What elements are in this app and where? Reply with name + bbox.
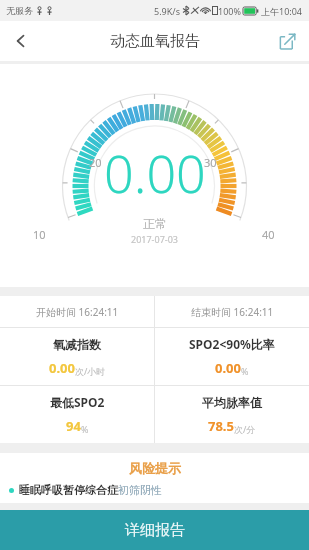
staticText: 初筛阴性: [118, 483, 162, 497]
staticText: 0.00: [49, 359, 75, 377]
button[interactable]: 氧减指数: [0, 328, 154, 385]
staticText: %: [81, 423, 89, 435]
staticText: 无服务: [6, 5, 33, 16]
staticText: 10: [33, 227, 46, 242]
staticText: 正常: [143, 216, 167, 231]
staticText: 0.00: [104, 137, 206, 208]
staticText: 2017-07-03: [131, 233, 178, 245]
button[interactable]: Back: [0, 21, 42, 61]
staticText: %: [241, 365, 249, 377]
staticText: 5.9K/s: [154, 5, 180, 17]
staticText: 风险提示: [129, 460, 181, 476]
staticText: 0: [48, 314, 55, 329]
button[interactable]: 详细报告: [0, 510, 309, 550]
staticText: 次/小时: [75, 365, 106, 377]
staticText: 睡眠呼吸暂停综合症: [19, 483, 118, 497]
staticText: SPO2<90%比率: [189, 336, 275, 352]
staticText: 结束时间 16:24:11: [191, 305, 274, 319]
staticText: 20: [89, 155, 102, 170]
staticText: 次/分: [234, 423, 256, 435]
button[interactable]: Share: [265, 21, 309, 61]
staticText: 动态血氧报告: [110, 32, 200, 51]
staticText: 50: [249, 314, 262, 329]
staticText: 最低SPO2: [50, 394, 105, 410]
staticText: 40: [262, 227, 275, 242]
button[interactable]: 最低SPO2: [0, 386, 154, 443]
staticText: 上午10:04: [261, 5, 303, 17]
staticText: 氧减指数: [53, 337, 101, 352]
staticText: 详细报告: [125, 521, 185, 540]
staticText: 30: [204, 155, 217, 170]
button[interactable]: 平均脉率值: [155, 386, 309, 443]
staticText: 平均脉率值: [202, 395, 262, 410]
staticText: 0.00: [215, 359, 241, 377]
button[interactable]: SPO2<90%比率: [155, 328, 309, 385]
staticText: 78.5: [208, 417, 234, 435]
staticText: 94: [66, 417, 81, 435]
staticText: 开始时间 16:24:11: [36, 305, 119, 319]
staticText: 100%: [218, 5, 241, 17]
